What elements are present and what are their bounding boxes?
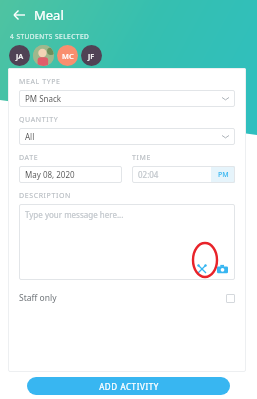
staticText: DESCRIPTION	[19, 191, 71, 201]
button[interactable]: JA	[9, 45, 30, 66]
button[interactable]: Camera	[215, 262, 229, 276]
staticText: PM	[218, 170, 229, 180]
staticText: ADD ACTIVITY	[99, 381, 159, 392]
button[interactable]: Type your message here...	[19, 204, 235, 280]
button[interactable]: All	[19, 128, 235, 145]
staticText: All	[25, 131, 222, 142]
staticText: TIME	[132, 153, 151, 163]
button[interactable]: May 08, 2020	[19, 166, 122, 183]
staticText: May 08, 2020	[25, 169, 75, 180]
button[interactable]: 02:04	[132, 166, 235, 183]
staticText: MEAL TYPE	[19, 77, 61, 87]
staticText: 4 STUDENTS SELECTED	[10, 32, 90, 41]
staticText: JA	[16, 51, 24, 61]
staticText: JF	[88, 51, 95, 61]
button[interactable]: Student avatar	[33, 45, 54, 66]
button[interactable]: Meal icon	[195, 262, 209, 276]
staticText: Staff only	[19, 292, 226, 304]
button[interactable]: ADD ACTIVITY	[27, 377, 230, 395]
staticText: DATE	[19, 153, 39, 163]
button[interactable]: MC	[57, 45, 78, 66]
button[interactable]: Staff only	[19, 290, 235, 306]
button[interactable]: PM Snack	[19, 90, 235, 107]
staticText: QUANTITY	[19, 115, 59, 125]
staticText: 02:04	[138, 169, 211, 180]
button[interactable]: Back	[8, 4, 30, 26]
staticText: MC	[62, 51, 74, 61]
staticText: Type your message here...	[25, 209, 124, 220]
staticText: Meal	[34, 6, 64, 24]
button[interactable]: JF	[81, 45, 102, 66]
staticText: PM Snack	[25, 93, 222, 104]
